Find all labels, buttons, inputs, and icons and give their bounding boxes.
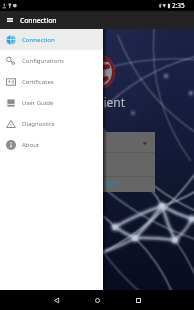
button[interactable]: Certificates [0,71,103,92]
staticText: Connection [22,36,55,44]
staticText: 2:35 [172,1,185,10]
button[interactable]: Home [82,290,112,310]
button[interactable]: Configurations [0,50,103,71]
button[interactable]: Open navigation drawer [0,11,20,29]
staticText: Certificates [22,78,54,86]
staticText: About [22,141,40,149]
staticText: Connection [20,16,57,25]
button[interactable]: Diagnostics [0,113,103,134]
button[interactable]: User Guide [0,92,103,113]
button[interactable]: Connection [0,29,103,50]
staticText: Diagnostics [22,120,55,128]
staticText: VPN Client [66,94,125,110]
staticText: CONNECT [90,180,122,189]
button[interactable]: About [0,134,103,155]
button[interactable]: Recent apps [123,290,153,310]
staticText: User Guide [22,99,54,107]
button[interactable]: Back [41,290,71,310]
staticText: Configurations [22,57,64,65]
